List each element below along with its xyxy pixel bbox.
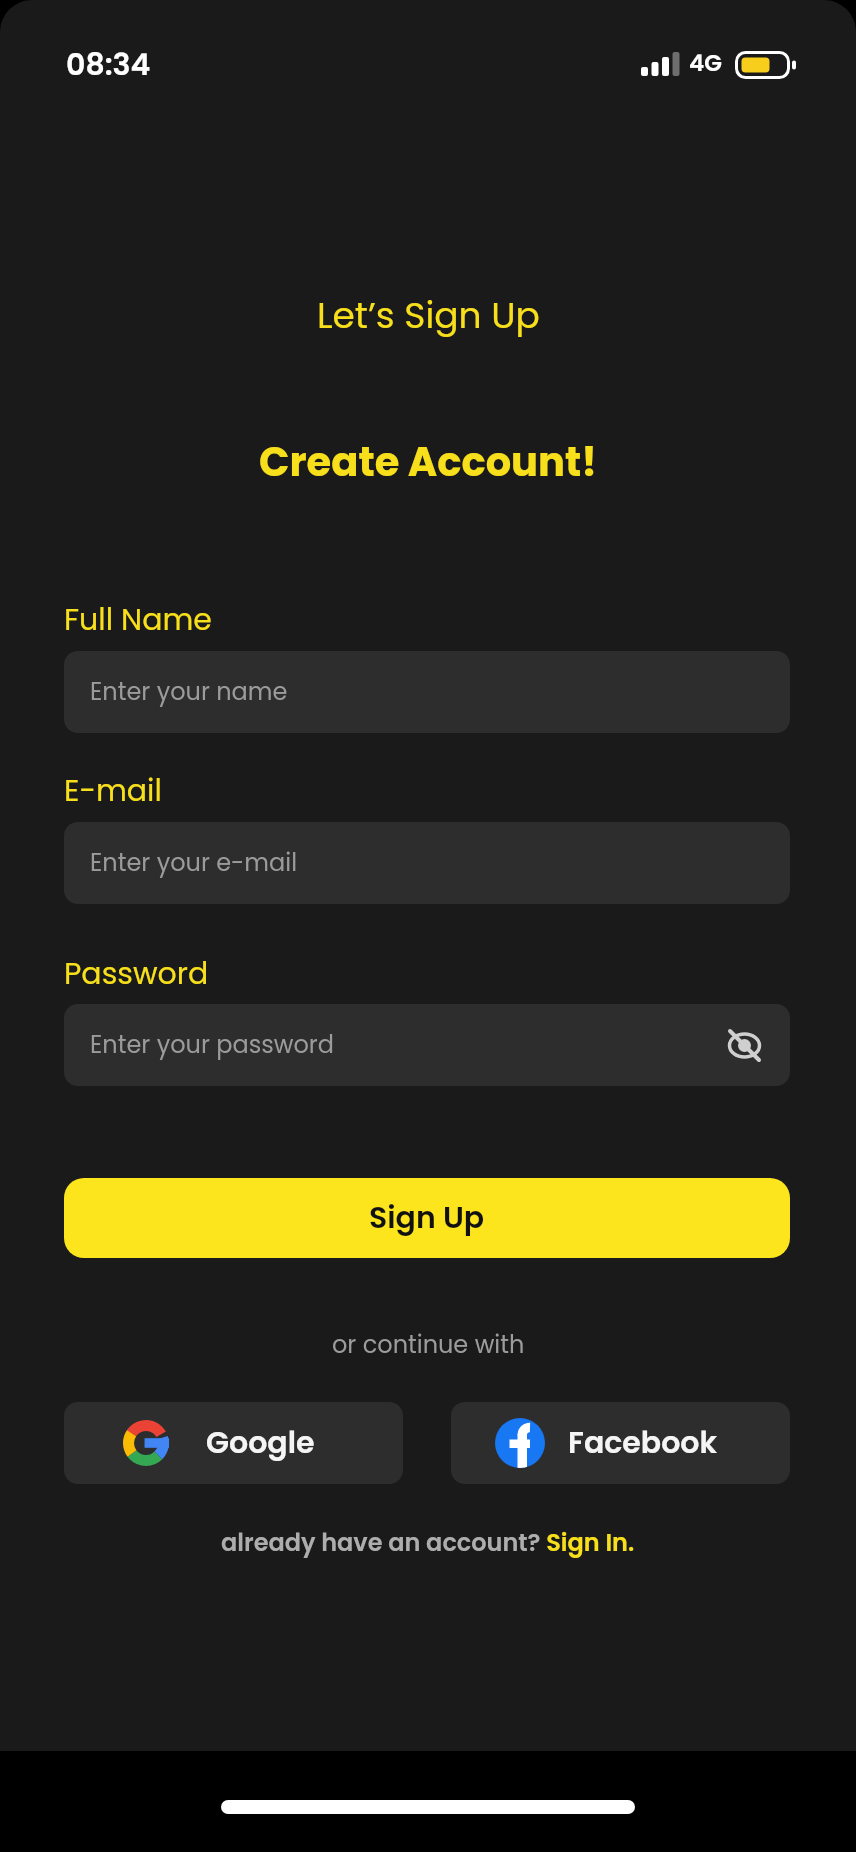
staticText: Create Account! bbox=[259, 434, 597, 490]
button[interactable] bbox=[722, 1023, 766, 1067]
staticText: Enter your name bbox=[90, 675, 288, 709]
button[interactable]: Enter your password bbox=[64, 1004, 790, 1086]
button[interactable]: Google bbox=[64, 1402, 403, 1484]
button[interactable]: Facebook bbox=[451, 1402, 790, 1484]
button[interactable]: Enter your e-mail bbox=[64, 822, 790, 904]
button[interactable]: already have an account? Sign In. bbox=[221, 1526, 635, 1560]
button[interactable]: Enter your name bbox=[64, 651, 790, 733]
staticText: Enter your password bbox=[90, 1028, 334, 1062]
staticText: Google bbox=[206, 1422, 315, 1464]
staticText: Full Name bbox=[64, 599, 212, 641]
staticText: Facebook bbox=[568, 1422, 717, 1464]
staticText: 4G bbox=[689, 47, 722, 79]
staticText: Sign Up bbox=[369, 1197, 485, 1239]
staticText: or continue with bbox=[332, 1328, 525, 1362]
staticText: Enter your e-mail bbox=[90, 846, 298, 880]
staticText: 08:34 bbox=[66, 44, 151, 86]
staticText: E-mail bbox=[64, 770, 162, 812]
button[interactable]: Sign Up bbox=[64, 1178, 790, 1258]
staticText: Let’s Sign Up bbox=[317, 290, 540, 340]
staticText: Password bbox=[64, 953, 209, 995]
